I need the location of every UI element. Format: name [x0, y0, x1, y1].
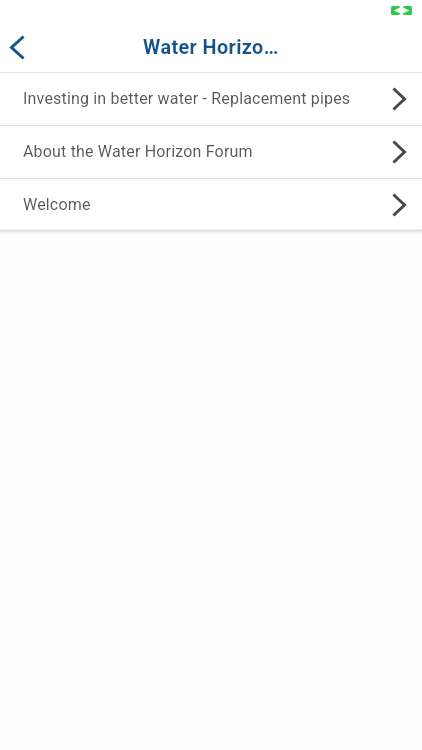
staticText: Welcome — [23, 195, 393, 214]
staticText: Investing in better water - Replacement … — [23, 89, 393, 108]
button[interactable]: Investing in better water - Replacement … — [0, 73, 422, 125]
button[interactable]: Welcome — [0, 179, 422, 231]
button[interactable]: Back — [0, 25, 33, 69]
staticText: Water Horizo… — [143, 36, 279, 59]
button[interactable]: About the Water Horizon Forum — [0, 126, 422, 178]
staticText: About the Water Horizon Forum — [23, 142, 393, 161]
other: Status — [391, 6, 412, 15]
